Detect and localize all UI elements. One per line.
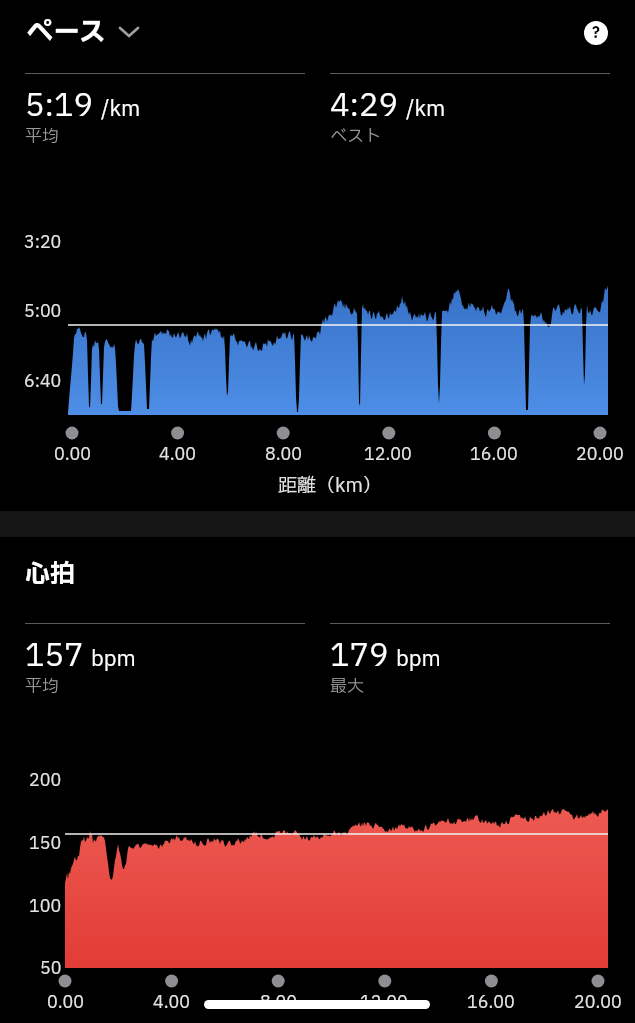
staticText: 50 [40,956,62,981]
staticText: 距離（km） [278,472,382,500]
staticText: /km [406,94,446,125]
staticText: 12.00 [364,442,412,467]
staticText: 5:19 [25,83,94,129]
staticText: 4:29 [330,83,399,129]
staticText: 4.00 [159,442,196,467]
staticText: 0.00 [54,442,91,467]
staticText: 16.00 [467,990,515,1015]
staticText: 8.00 [265,442,302,467]
staticText: bpm [396,644,441,675]
staticText: 5:00 [24,299,62,324]
staticText: ベスト [330,124,381,149]
staticText: 6:40 [24,369,62,394]
staticText: ペース [26,12,106,52]
staticText: 8.00 [260,990,297,1015]
staticText: 心拍 [25,556,76,593]
staticText: 16.00 [470,442,518,467]
staticText: 20.00 [576,442,624,467]
staticText: 3:20 [24,230,62,255]
staticText: 最大 [330,674,364,699]
staticText: 20.00 [574,990,622,1015]
staticText: bpm [91,644,136,675]
staticText: 平均 [25,124,59,149]
staticText: ? [592,22,600,44]
button[interactable]: ペース [24,8,142,56]
staticText: 200 [29,768,62,793]
staticText: /km [101,94,141,125]
staticText: 150 [29,831,62,856]
button[interactable]: ? [584,21,608,45]
staticText: 12.00 [360,990,408,1015]
staticText: 平均 [25,674,59,699]
staticText: 157 [25,633,84,679]
staticText: 179 [330,633,389,679]
staticText: 4.00 [153,990,190,1015]
staticText: 100 [29,894,62,919]
staticText: 0.00 [47,990,84,1015]
